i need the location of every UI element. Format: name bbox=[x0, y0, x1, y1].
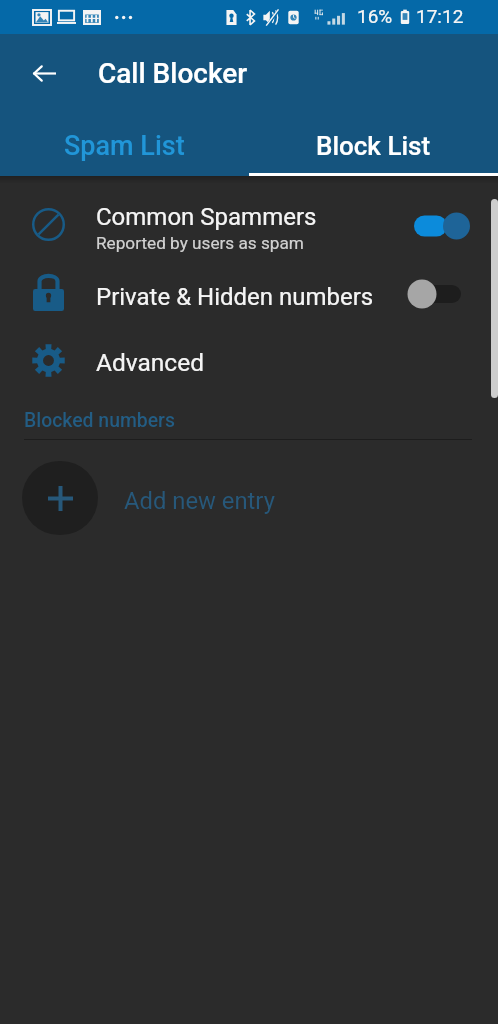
button[interactable]: Common Spammers bbox=[0, 193, 498, 261]
staticText: 16% bbox=[357, 5, 393, 27]
staticText: Reported by users as spam bbox=[96, 233, 304, 253]
button[interactable]: Block List bbox=[249, 110, 498, 176]
staticText: Private & Hidden numbers bbox=[96, 283, 374, 311]
staticText: Spam List bbox=[64, 130, 185, 162]
button[interactable]: Advanced bbox=[0, 327, 498, 395]
staticText: Blocked numbers bbox=[24, 409, 175, 432]
staticText: 17:12 bbox=[416, 5, 464, 27]
button[interactable]: Disabled bbox=[407, 277, 463, 311]
staticText: Common Spammers bbox=[96, 203, 317, 231]
button[interactable]: Spam List bbox=[0, 110, 249, 176]
staticText: Add new entry bbox=[124, 487, 275, 515]
button[interactable]: Private & Hidden numbers bbox=[0, 261, 498, 329]
button[interactable]: Navigate up bbox=[18, 47, 70, 99]
staticText: Call Blocker bbox=[98, 57, 248, 90]
button[interactable]: Add new entry bbox=[0, 461, 498, 535]
staticText: Block List bbox=[316, 131, 431, 161]
staticText: Advanced bbox=[96, 348, 204, 377]
button[interactable]: Enabled bbox=[414, 209, 470, 243]
